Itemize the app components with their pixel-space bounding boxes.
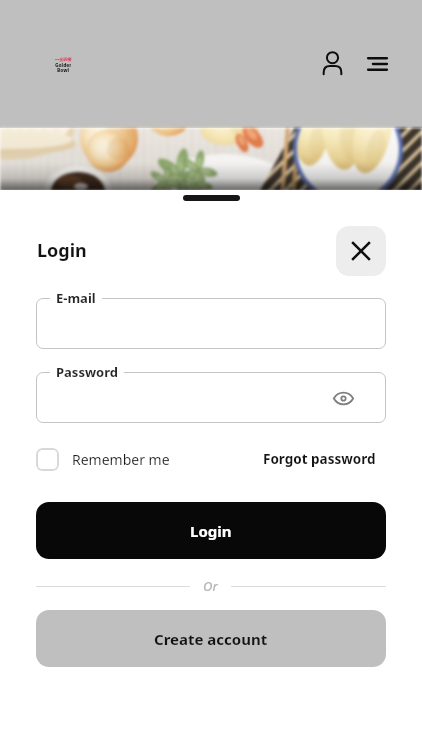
staticText: Login bbox=[37, 238, 87, 263]
button[interactable]: Menu bbox=[357, 44, 397, 84]
staticText: Or bbox=[203, 577, 218, 595]
staticText: Bowl bbox=[57, 67, 70, 74]
staticText: Password bbox=[56, 363, 118, 381]
staticText: Remember me bbox=[72, 450, 170, 469]
button[interactable]: Login bbox=[36, 502, 386, 559]
button[interactable]: The Golden Bowl home bbox=[55, 57, 71, 73]
staticText: Login bbox=[190, 521, 232, 541]
button[interactable]: Account bbox=[312, 43, 352, 83]
staticText: Forgot password bbox=[263, 450, 376, 468]
staticText: 金碗餐 bbox=[59, 57, 72, 62]
button[interactable]: Remember me bbox=[36, 448, 170, 471]
button[interactable] bbox=[36, 372, 386, 423]
button[interactable]: Create account bbox=[36, 610, 386, 667]
button[interactable]: Show password bbox=[329, 384, 357, 412]
button[interactable]: Close bbox=[336, 226, 386, 276]
staticText: Golden bbox=[55, 62, 71, 69]
staticText: E-mail bbox=[56, 289, 96, 307]
button[interactable] bbox=[36, 298, 386, 349]
staticText: The bbox=[55, 58, 59, 61]
button[interactable]: Forgot password bbox=[263, 450, 386, 468]
staticText: Create account bbox=[154, 629, 268, 649]
